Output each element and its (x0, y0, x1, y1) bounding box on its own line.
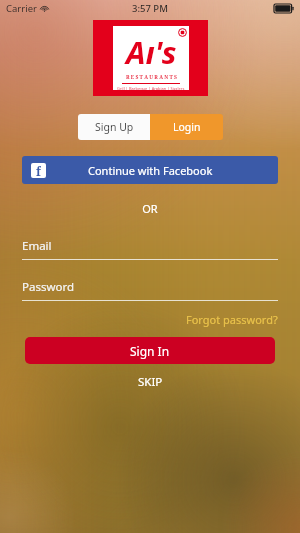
staticText: Password (22, 279, 75, 295)
button[interactable]: Password (22, 279, 278, 301)
button[interactable]: Sign In (25, 337, 275, 364)
button[interactable]: Forgot password? (186, 312, 278, 327)
staticText: Aı's (126, 31, 177, 73)
staticText: 3:57 PM (132, 2, 168, 15)
staticText: Grill | Barbeque | Arabian | Sizzlers (117, 86, 185, 90)
button[interactable]: SKIP (124, 372, 177, 392)
staticText: Forgot password? (186, 312, 278, 327)
staticText: Sign Up (95, 120, 134, 134)
staticText: Carrier (6, 2, 37, 15)
button[interactable]: Sign Up (78, 114, 150, 140)
staticText: SKIP (138, 374, 163, 390)
staticText: OR (0, 201, 300, 216)
staticText: Continue with Facebook (88, 163, 213, 178)
button[interactable]: f (22, 156, 278, 184)
staticText: Email (22, 238, 52, 254)
staticText: Sign In (130, 343, 170, 359)
staticText: f (36, 163, 41, 178)
button[interactable]: Login (150, 114, 223, 140)
staticText: R E S T A U R A N T S (126, 74, 177, 81)
button[interactable]: Email (22, 238, 278, 260)
staticText: Login (173, 120, 201, 134)
